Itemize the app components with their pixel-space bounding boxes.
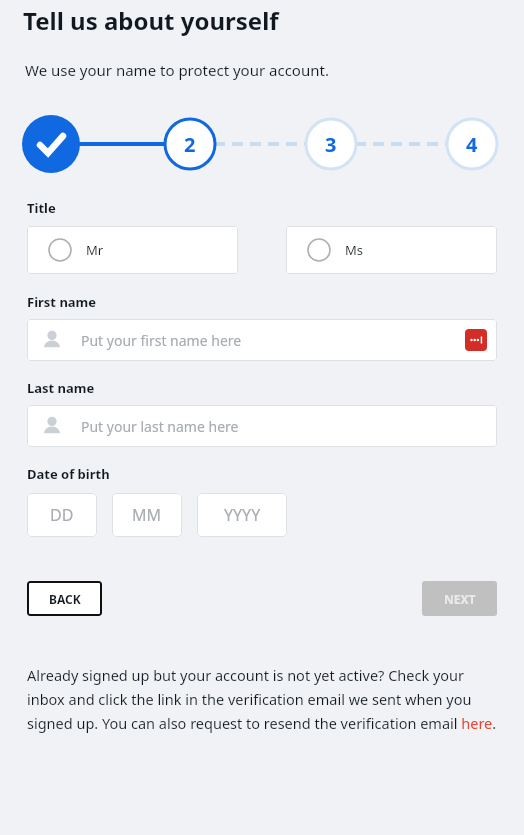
button[interactable]: Autofill <box>465 329 487 351</box>
staticText: MM <box>132 504 162 526</box>
staticText: Put your last name here <box>81 417 239 436</box>
staticText: Mr <box>86 241 104 259</box>
staticText: We use your name to protect your account… <box>25 60 329 80</box>
button[interactable]: MM <box>112 493 182 537</box>
button[interactable]: Put your last name here <box>27 405 497 447</box>
staticText: 3 <box>325 131 337 158</box>
staticText: 4 <box>466 131 478 158</box>
staticText: Last name <box>27 379 95 397</box>
button[interactable]: Ms <box>286 226 497 274</box>
staticText: YYYY <box>224 504 261 526</box>
staticText: Date of birth <box>27 465 110 483</box>
staticText: Already signed up but your account is no… <box>27 665 504 733</box>
staticText: NEXT <box>444 591 476 607</box>
staticText: Tell us about yourself <box>23 4 279 37</box>
staticText: First name <box>27 293 97 311</box>
button[interactable]: DD <box>27 493 97 537</box>
staticText: Put your first name here <box>81 331 242 350</box>
staticText: DD <box>50 504 74 526</box>
button[interactable]: BACK <box>27 581 102 616</box>
staticText: Ms <box>345 241 364 259</box>
staticText: BACK <box>49 591 81 607</box>
staticText: 2 <box>184 131 196 158</box>
button[interactable]: Put your first name here <box>27 319 497 361</box>
staticText: Title <box>27 199 56 217</box>
button[interactable]: YYYY <box>197 493 287 537</box>
button[interactable]: Mr <box>27 226 238 274</box>
button[interactable]: NEXT <box>422 581 497 616</box>
